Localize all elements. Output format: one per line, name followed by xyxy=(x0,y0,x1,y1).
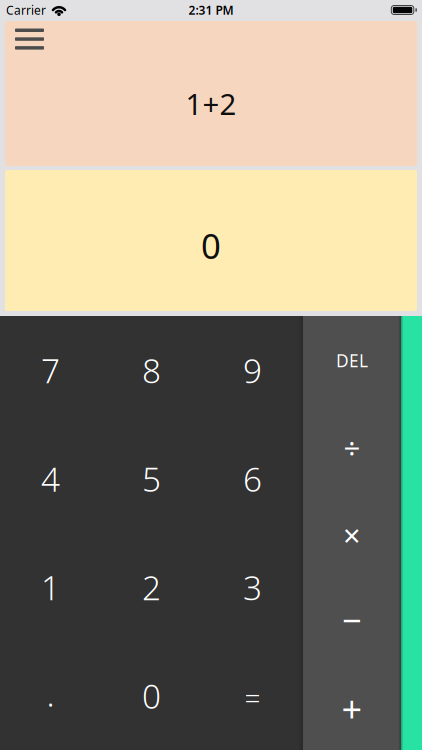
staticText: 0 xyxy=(201,222,221,268)
staticText: 2 xyxy=(142,565,161,609)
button[interactable]: DEL xyxy=(303,316,401,403)
staticText: ÷ xyxy=(343,429,360,468)
staticText: = xyxy=(244,680,260,717)
button[interactable]: 4 xyxy=(0,424,101,533)
button[interactable]: − xyxy=(303,576,401,663)
staticText: × xyxy=(343,515,361,555)
staticText: 1 xyxy=(41,565,60,609)
staticText: . xyxy=(46,672,54,716)
button[interactable]: × xyxy=(303,490,401,576)
staticText: − xyxy=(342,597,362,643)
staticText: 2:31 PM xyxy=(188,2,233,18)
button[interactable]: Menu xyxy=(15,28,44,50)
button[interactable]: 9 xyxy=(202,316,303,424)
staticText: 9 xyxy=(243,348,262,392)
button[interactable]: + xyxy=(303,663,401,750)
staticText: 3 xyxy=(243,565,262,609)
staticText: + xyxy=(341,685,362,732)
staticText: 7 xyxy=(41,348,60,392)
button[interactable]: 5 xyxy=(101,424,202,533)
staticText: 0 xyxy=(142,674,161,718)
button[interactable]: = xyxy=(202,641,303,750)
staticText: 5 xyxy=(142,457,161,501)
button[interactable]: 0 xyxy=(101,641,202,750)
button[interactable]: 1 xyxy=(0,533,101,641)
staticText: Carrier xyxy=(6,2,46,18)
staticText: 6 xyxy=(243,457,262,501)
button[interactable]: Equals xyxy=(401,316,422,750)
staticText: 4 xyxy=(41,457,60,501)
button[interactable]: 2 xyxy=(101,533,202,641)
button[interactable]: ÷ xyxy=(303,403,401,490)
staticText: DEL xyxy=(336,349,368,372)
button[interactable]: 8 xyxy=(101,316,202,424)
button[interactable]: . xyxy=(0,641,101,750)
button[interactable]: 7 xyxy=(0,316,101,424)
staticText: 8 xyxy=(142,348,161,392)
button[interactable]: 6 xyxy=(202,424,303,533)
button[interactable]: 3 xyxy=(202,533,303,641)
staticText: 1+2 xyxy=(185,84,236,123)
